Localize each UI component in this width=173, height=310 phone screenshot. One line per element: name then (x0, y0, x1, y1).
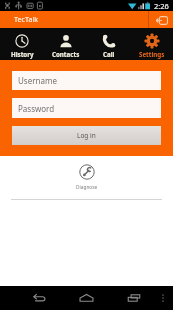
button[interactable]: Call (87, 28, 130, 60)
staticText: History (11, 50, 34, 58)
button[interactable]: Log out (149, 11, 173, 28)
button[interactable]: Settings (130, 28, 173, 60)
staticText: Log in (77, 131, 96, 140)
button[interactable]: Recent apps (126, 290, 142, 306)
button[interactable]: Contacts (44, 28, 87, 60)
button[interactable]: Username (12, 71, 161, 90)
button[interactable]: More options (158, 293, 168, 303)
button[interactable]: Password (12, 98, 161, 118)
staticText: Settings (139, 50, 165, 58)
staticText: Contacts (52, 50, 80, 58)
staticText: TecTalk (14, 14, 39, 24)
button[interactable]: Log in (12, 126, 161, 145)
button[interactable]: Home (78, 290, 95, 307)
button[interactable]: Back (31, 290, 47, 306)
staticText: Password (18, 103, 55, 114)
staticText: Diagnose (76, 184, 98, 191)
staticText: 2:26 (154, 1, 169, 11)
staticText: Username (18, 75, 57, 86)
button[interactable]: History (0, 28, 44, 60)
staticText: Call (103, 50, 115, 58)
button[interactable]: Diagnose (0, 164, 173, 191)
